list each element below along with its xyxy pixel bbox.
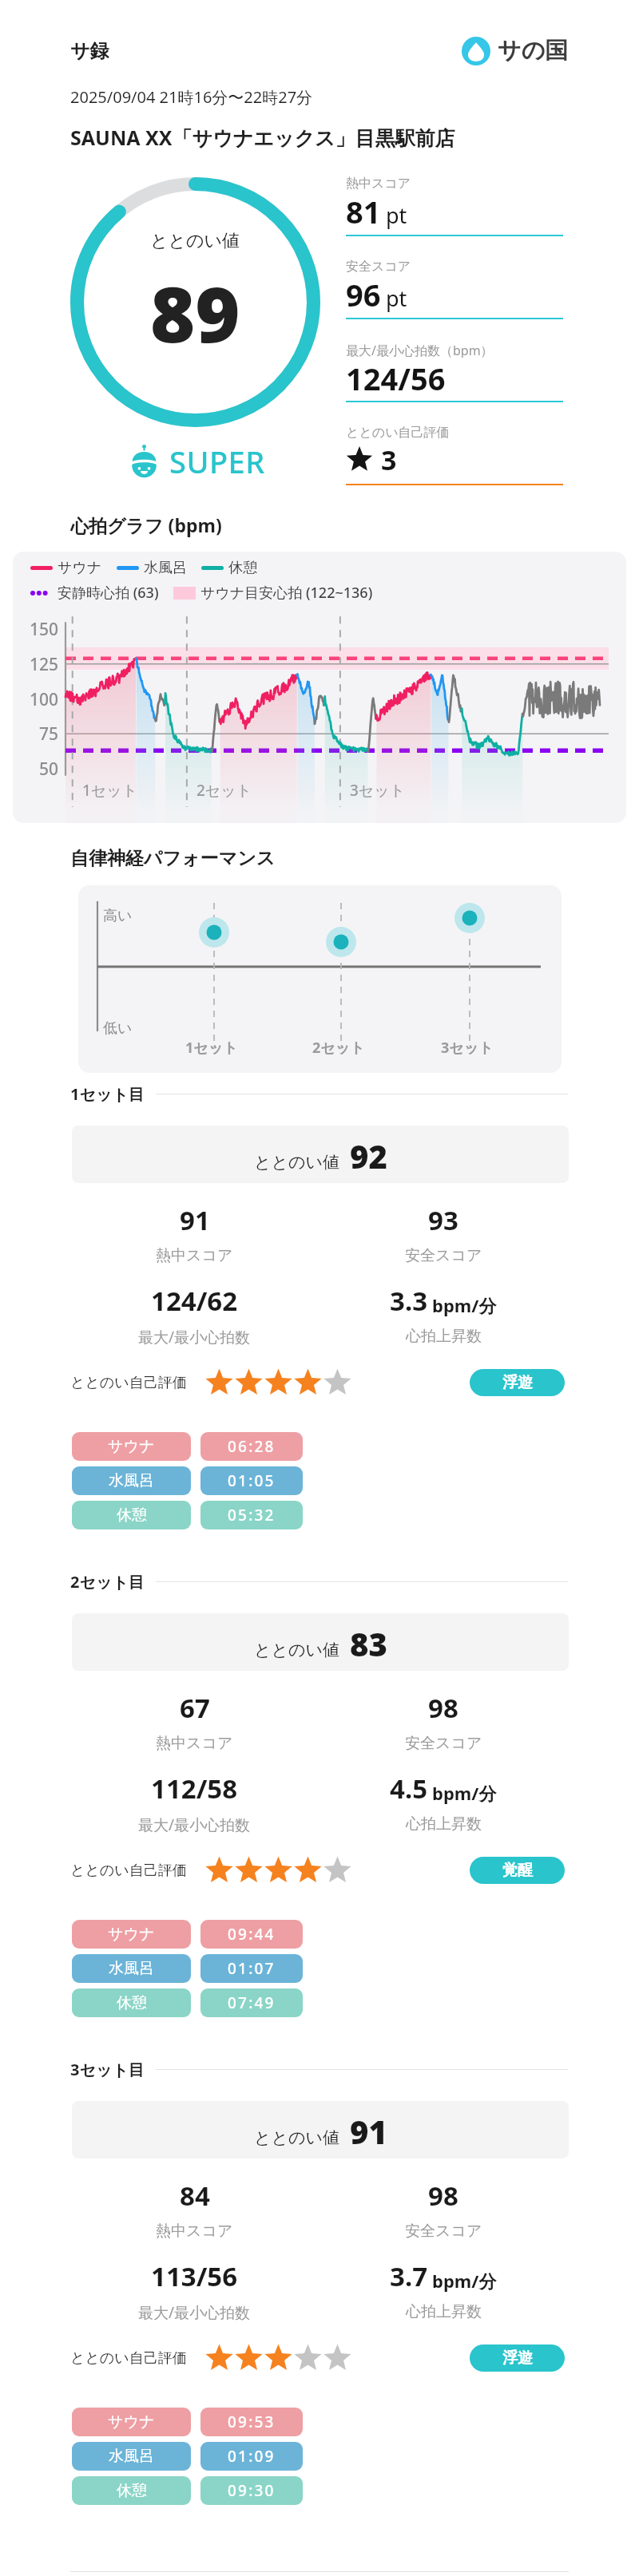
staticText: 09:53 [228,2412,276,2432]
staticText: ととのい値 [254,1640,339,1660]
staticText: サウナ [108,1437,155,1456]
staticText: bpm/分 [432,1293,497,1317]
button[interactable]: 浮遊 [470,2345,565,2372]
staticText: 1セット目 [70,1083,145,1105]
staticText: 心拍上昇数 [406,1814,482,1834]
staticText: 熱中スコア [346,176,411,192]
staticText: 覚醒 [502,1861,533,1880]
staticText: 休憩 [117,1993,147,2012]
staticText: ととのい自己評価 [346,425,450,441]
staticText: 自律神経パフォーマンス [70,847,276,870]
staticText: 最大/最小心拍数 [138,2302,251,2323]
staticText: 水風呂 [109,2447,154,2466]
staticText: 浮遊 [502,1373,533,1392]
staticText: 心拍上昇数 [406,1327,482,1346]
button[interactable]: 覚醒 [470,1857,565,1884]
staticText: 心拍グラフ (bpm) [70,512,222,537]
button[interactable]: 水風呂 [72,1466,191,1495]
staticText: サウナ [58,559,102,577]
button[interactable]: 05:32 [200,1501,303,1529]
staticText: 水風呂 [109,1959,154,1978]
staticText: 3 [381,441,397,478]
button[interactable]: 水風呂 [72,2442,191,2471]
staticText: 07:49 [228,1992,276,2013]
staticText: pt [386,283,407,313]
staticText: ととのい値 [254,2127,339,2148]
staticText: 休憩 [117,2481,147,2500]
staticText: 125 [30,653,59,676]
staticText: 2025/09/04 21時16分〜22時27分 [70,86,313,108]
staticText: 2セット [196,780,252,801]
staticText: 1セット [82,780,138,801]
staticText: SAUNA XX「サウナエックス」目黒駅前店 [70,124,455,151]
button[interactable]: 01:07 [200,1954,303,1983]
staticText: 休憩 [117,1506,147,1525]
staticText: pt [386,200,407,230]
staticText: 最大/最小心拍数 [138,1327,251,1347]
staticText: 4.5 [390,1771,428,1806]
staticText: 安全スコア [405,1246,482,1265]
staticText: 81 [346,191,381,228]
staticText: 09:30 [228,2480,276,2501]
staticText: 67 [180,1690,210,1726]
staticText: 113/56 [151,2258,238,2294]
staticText: 50 [39,758,59,781]
staticText: 92 [350,1134,387,1177]
staticText: サウナ [108,2412,155,2432]
button[interactable]: 休憩 [72,1501,191,1529]
staticText: 01:07 [228,1958,276,1979]
staticText: 3セット目 [70,2059,145,2080]
button[interactable]: 浮遊 [470,1369,565,1396]
button[interactable]: 09:53 [200,2408,303,2436]
staticText: サウナ [108,1925,155,1944]
staticText: 低い [103,1019,133,1038]
button[interactable]: サウナ [72,2408,191,2436]
staticText: 安全スコア [346,259,411,275]
staticText: 124/62 [151,1283,238,1319]
button[interactable]: 休憩 [72,2476,191,2505]
staticText: 最大/最小心拍数 [138,1814,251,1835]
staticText: 熱中スコア [156,1246,233,1265]
staticText: 06:28 [228,1436,276,1457]
button[interactable]: 01:05 [200,1466,303,1495]
staticText: 水風呂 [109,1471,154,1490]
staticText: 100 [30,688,59,711]
staticText: 水風呂 [144,559,187,577]
staticText: 3セット [350,780,406,801]
staticText: 高い [103,907,133,925]
staticText: 93 [428,1202,458,1238]
staticText: ととのい値 [150,230,240,252]
button[interactable]: サウナ [72,1920,191,1949]
staticText: bpm/分 [432,1781,497,1805]
button[interactable]: サウナ [72,1432,191,1461]
staticText: 3.7 [390,2258,428,2294]
staticText: bpm/分 [432,2269,497,2293]
button[interactable]: 07:49 [200,1988,303,2017]
staticText: ととのい値 [254,1152,339,1173]
button[interactable]: 01:09 [200,2442,303,2471]
staticText: 98 [428,1690,458,1726]
staticText: 2セット目 [70,1571,145,1593]
button[interactable]: 09:44 [200,1920,303,1949]
staticText: 熱中スコア [156,2222,233,2241]
button[interactable]: 休憩 [72,1988,191,2017]
staticText: 休憩 [228,559,257,577]
button[interactable]: 06:28 [200,1432,303,1461]
staticText: 75 [39,722,59,746]
staticText: 心拍上昇数 [406,2302,482,2321]
staticText: 09:44 [228,1924,276,1945]
staticText: 2セット [312,1038,365,1058]
staticText: 05:32 [228,1505,276,1525]
staticText: 熱中スコア [156,1734,233,1753]
button[interactable]: 水風呂 [72,1954,191,1983]
staticText: 91 [180,1202,210,1238]
staticText: ととのい自己評価 [70,1374,187,1392]
staticText: サウナ目安心拍 (122~136) [200,583,373,603]
staticText: 1セット [185,1038,238,1058]
staticText: 最大/最小心拍数（bpm） [346,342,494,358]
staticText: 98 [428,2178,458,2214]
staticText: 112/58 [151,1771,238,1806]
button[interactable]: 09:30 [200,2476,303,2505]
staticText: 124/56 [346,358,446,394]
staticText: サの国 [498,36,569,65]
